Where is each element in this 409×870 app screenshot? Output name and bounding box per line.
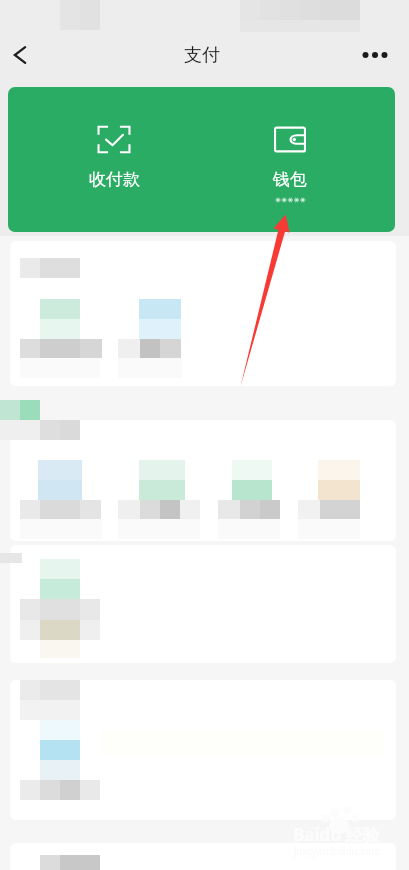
button[interactable]: Back (0, 33, 44, 77)
staticText: 钱包 (273, 169, 307, 190)
button[interactable]: More options (363, 32, 409, 78)
button[interactable]: Receive or pay (64, 87, 164, 232)
button[interactable]: Wallet (240, 87, 340, 232)
staticText: Baidu 经验 (293, 823, 380, 846)
staticText: 支付 (184, 44, 220, 67)
staticText: 收付款 (89, 169, 140, 190)
